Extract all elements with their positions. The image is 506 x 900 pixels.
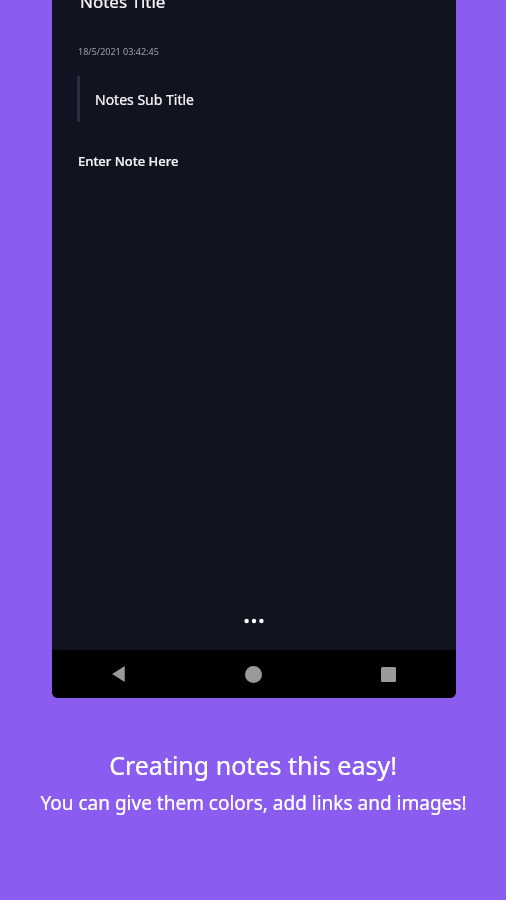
staticText: 18/5/2021 03:42:45 [78,45,159,57]
staticText: Enter Note Here [78,152,179,170]
staticText: Creating notes this easy! [109,748,397,782]
button[interactable]: Notes Title [78,0,168,15]
button[interactable]: Back [52,650,186,698]
staticText: Notes Sub Title [95,90,194,109]
button[interactable]: Recent apps [321,650,456,698]
button[interactable]: Notes Sub Title [77,76,194,122]
staticText: You can give them colors, add links and … [40,790,467,816]
staticText: Notes Title [80,0,166,13]
button[interactable]: More options [234,610,274,632]
button[interactable]: Enter Note Here [76,150,181,172]
button[interactable]: Home [186,650,321,698]
